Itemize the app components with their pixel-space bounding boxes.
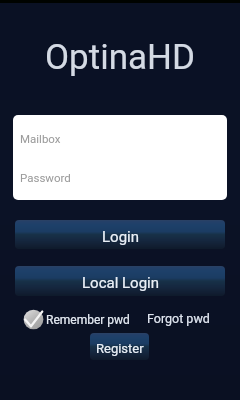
staticText: Password: [20, 171, 71, 184]
button[interactable]: Mailbox: [13, 115, 227, 157]
button[interactable]: Remember pwd: [23, 309, 130, 330]
button[interactable]: Local Login: [15, 266, 225, 296]
staticText: Local Login: [82, 274, 159, 292]
staticText: Remember pwd: [46, 313, 130, 327]
button[interactable]: Login: [15, 220, 225, 249]
staticText: Mailbox: [20, 132, 61, 145]
button[interactable]: Password: [13, 157, 227, 200]
button[interactable]: Forgot pwd: [147, 311, 210, 326]
staticText: Forgot pwd: [147, 311, 210, 326]
staticText: Register: [96, 341, 144, 356]
button[interactable]: Register: [90, 333, 149, 360]
staticText: OptinaHD: [0, 37, 240, 78]
staticText: Login: [102, 228, 139, 246]
